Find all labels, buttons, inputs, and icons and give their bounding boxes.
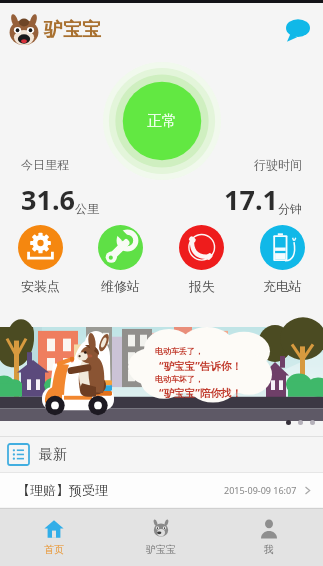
staticText: 驴宝宝: [146, 543, 176, 556]
button[interactable]: 报失: [161, 225, 242, 294]
button[interactable]: 驴宝宝: [6, 12, 101, 48]
staticText: 电动车丢了，: [155, 346, 203, 356]
button[interactable]: 电动车丢了，: [0, 327, 323, 421]
staticText: 17.1: [224, 181, 278, 218]
staticText: 今日里程: [21, 157, 69, 172]
button[interactable]: 充电站: [242, 225, 323, 294]
staticText: 2015-09-09 16:07: [224, 484, 297, 496]
staticText: 我: [264, 543, 274, 556]
staticText: 报失: [189, 278, 215, 294]
staticText: 电动车坏了，: [155, 374, 203, 384]
staticText: 首页: [44, 543, 64, 556]
button[interactable]: 安装点: [0, 225, 80, 294]
staticText: 公里: [75, 201, 99, 216]
staticText: 维修站: [101, 278, 140, 294]
staticText: 31.6: [21, 181, 75, 218]
button[interactable]: 我: [215, 509, 323, 566]
staticText: 驴宝宝: [44, 18, 101, 42]
button[interactable]: 驴宝宝: [107, 509, 215, 566]
button[interactable]: 维修站: [80, 225, 161, 294]
staticText: 最新: [39, 446, 67, 464]
staticText: 【理赔】预受理: [17, 482, 108, 498]
button[interactable]: 【理赔】预受理: [0, 473, 323, 507]
staticText: 正常: [147, 112, 177, 131]
staticText: “驴宝宝”告诉你！: [159, 359, 242, 373]
button[interactable]: 首页: [0, 509, 107, 566]
staticText: 行驶时间: [254, 157, 302, 172]
staticText: 充电站: [263, 278, 302, 294]
button[interactable]: Messages: [283, 15, 313, 45]
staticText: “驴宝宝”陪你找！: [159, 386, 242, 400]
staticText: 分钟: [278, 201, 302, 216]
staticText: 安装点: [21, 278, 60, 294]
